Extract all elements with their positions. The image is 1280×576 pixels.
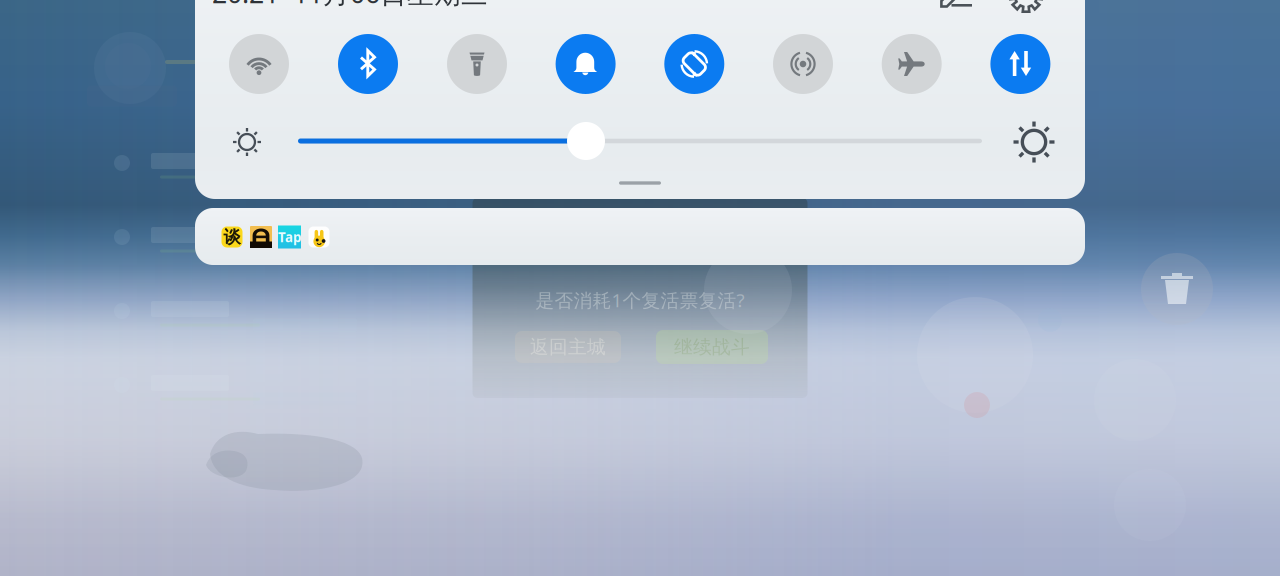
button[interactable]: Bluetooth — [338, 34, 398, 94]
button[interactable]: Dictionary app — [221, 226, 242, 247]
staticText: 谈 — [223, 226, 240, 248]
staticText: 是否消耗1个复活票复活? — [535, 288, 744, 312]
staticText: 20:21 11月06日星期三 — [212, 0, 488, 11]
button[interactable]: Edit — [939, 0, 975, 11]
button[interactable]: Ringer — [556, 34, 616, 94]
button[interactable]: Mobile data — [990, 34, 1050, 94]
button[interactable]: Wi-Fi — [229, 34, 289, 94]
staticText: 继续战斗 — [674, 335, 750, 358]
button[interactable]: Settings — [1007, 0, 1045, 14]
button[interactable]: Rabbit app — [308, 226, 329, 247]
button[interactable]: Hotspot — [773, 34, 833, 94]
button[interactable]: Flashlight — [447, 34, 507, 94]
staticText: Tap — [278, 228, 301, 246]
button[interactable]: Transit app — [250, 226, 272, 248]
button[interactable]: TapTap — [278, 225, 301, 248]
staticText: 返回主城 — [530, 335, 606, 358]
button[interactable]: Auto rotate — [664, 34, 724, 94]
button[interactable]: Airplane mode — [882, 34, 942, 94]
